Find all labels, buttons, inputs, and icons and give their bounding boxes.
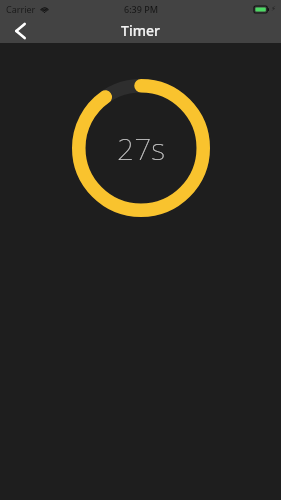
staticText: 6:39 PM: [124, 3, 158, 15]
button[interactable]: Back: [0, 18, 40, 43]
staticText: Carrier: [6, 3, 36, 15]
staticText: Timer: [121, 21, 160, 40]
staticText: 27s: [117, 128, 165, 169]
staticText: ⚡: [271, 5, 276, 13]
button[interactable]: Timer progress: [72, 79, 210, 217]
